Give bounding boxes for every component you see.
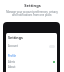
button[interactable]: Profile <box>6 53 57 59</box>
button[interactable]: Alerts <box>6 59 57 64</box>
staticText: Account <box>8 44 18 48</box>
staticText: Profile <box>8 54 16 58</box>
staticText: Manage your account preferences, privacy… <box>6 10 58 16</box>
staticText: Settings <box>8 35 23 40</box>
staticText: Settings <box>24 3 41 8</box>
button[interactable]: About <box>6 64 57 69</box>
staticText: Alerts <box>8 60 16 64</box>
staticText: About <box>8 65 16 69</box>
button[interactable]: Account <box>6 43 57 49</box>
